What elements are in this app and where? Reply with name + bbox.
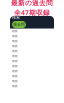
- staticText: 項目: [12, 29, 18, 33]
- staticText: 項目: [12, 34, 18, 38]
- staticText: 項目: [12, 49, 18, 53]
- staticText: 項目: [12, 39, 18, 43]
- staticText: 項目: [12, 74, 18, 78]
- staticText: 最新の過去問: [11, 0, 53, 7]
- staticText: 項目: [12, 64, 18, 68]
- staticText: 項目: [12, 69, 18, 73]
- staticText: 項目: [12, 44, 18, 48]
- staticText: 過去問: [13, 22, 25, 27]
- staticText: 項目: [12, 84, 18, 88]
- staticText: 項目: [12, 79, 18, 83]
- staticText: 項目: [12, 59, 18, 63]
- staticText: 項目: [12, 54, 18, 58]
- staticText: 全47期収録: [14, 8, 50, 17]
- staticText: 検索: [12, 15, 20, 20]
